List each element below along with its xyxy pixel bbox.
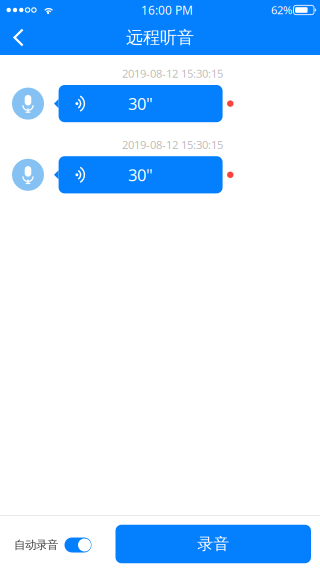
staticText: 录音 [197, 534, 229, 554]
button[interactable]: 30" [54, 85, 223, 122]
button[interactable]: Play voice message [12, 159, 44, 191]
button[interactable]: Back [0, 20, 37, 55]
button[interactable]: 录音 [115, 523, 311, 562]
button[interactable]: Play voice message [12, 88, 44, 120]
staticText: 30" [128, 163, 153, 186]
button[interactable]: 自动录音 [0, 519, 97, 565]
staticText: 62% [271, 2, 292, 18]
staticText: 16:00 PM [141, 2, 193, 18]
button[interactable]: 30" [54, 156, 223, 193]
staticText: 远程听音 [126, 27, 194, 48]
staticText: 30" [128, 92, 153, 115]
staticText: 2019-08-12 15:30:15 [122, 66, 223, 81]
staticText: 2019-08-12 15:30:15 [122, 137, 223, 152]
staticText: 自动录音 [14, 538, 58, 552]
